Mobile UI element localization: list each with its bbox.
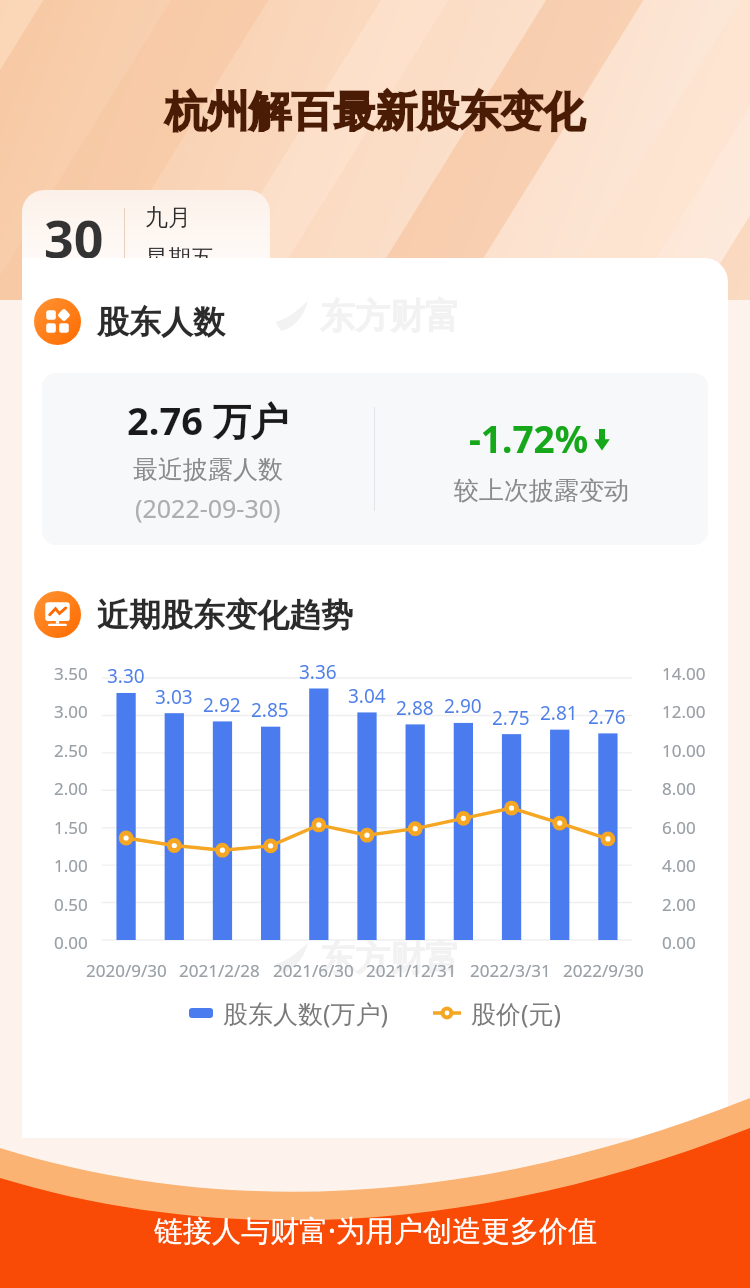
button[interactable]: 30	[22, 190, 270, 285]
staticText: 东方财富	[320, 294, 460, 338]
staticText: 0.00	[54, 931, 88, 954]
staticText: 2.00	[54, 777, 88, 800]
button[interactable]: 股东人数(万户)	[189, 996, 389, 1030]
staticText: 较上次披露变动	[454, 475, 629, 506]
staticText: 3.03	[155, 684, 193, 710]
staticText: 2.75	[492, 705, 530, 731]
button[interactable]: 近期股东变化趋势	[34, 591, 728, 638]
staticText: 0.50	[54, 893, 88, 916]
staticText: 最近披露人数	[133, 454, 283, 485]
button[interactable]: 股东人数	[34, 298, 728, 345]
staticText: 12.00	[662, 700, 706, 723]
staticText: 东方财富	[320, 936, 460, 980]
staticText: 8.00	[662, 777, 696, 800]
staticText: 2.00	[662, 893, 696, 916]
staticText: 股价(元)	[471, 996, 562, 1030]
other: 股东人数	[34, 298, 81, 345]
staticText: 链接人与财富·为用户创造更多价值	[154, 1210, 597, 1250]
staticText: 2021/2/28	[179, 959, 260, 982]
staticText: 股东人数	[97, 302, 225, 342]
staticText: 星期五	[145, 244, 214, 273]
staticText: 10.00	[662, 739, 706, 762]
staticText: 3.36	[299, 659, 337, 685]
staticText: 九月	[145, 203, 191, 232]
staticText: 3.04	[348, 683, 386, 709]
staticText: 2022/9/30	[563, 959, 644, 982]
staticText: 3.00	[54, 700, 88, 723]
staticText: 2.88	[396, 695, 434, 721]
staticText: 6.00	[662, 816, 696, 839]
staticText: 2.76	[588, 704, 626, 730]
staticText: 2021/6/30	[273, 959, 354, 982]
button[interactable]: 股价(元)	[433, 996, 562, 1030]
staticText: 股东人数(万户)	[223, 996, 389, 1030]
staticText: 3.30	[107, 663, 145, 689]
staticText: 1.50	[54, 816, 88, 839]
staticText: 3.50	[54, 662, 88, 685]
staticText: 0.00	[662, 931, 696, 954]
staticText: 2022/3/31	[470, 959, 551, 982]
staticText: 2020/9/30	[86, 959, 167, 982]
staticText: 2.50	[54, 739, 88, 762]
staticText: 2.90	[444, 693, 482, 719]
staticText: 1.00	[54, 854, 88, 877]
staticText: 2.81	[540, 700, 578, 726]
staticText: 2.92	[203, 692, 241, 718]
staticText: 14.00	[662, 662, 706, 685]
staticText: 近期股东变化趋势	[97, 595, 353, 635]
other: 近期股东变化趋势	[34, 591, 81, 638]
staticText: 2021/12/31	[366, 959, 457, 982]
staticText: 杭州解百最新股东变化	[0, 86, 750, 139]
button[interactable]: 2.76 万户	[42, 373, 708, 545]
staticText: 30	[44, 202, 104, 273]
staticText: 2.85	[251, 697, 289, 723]
staticText: 4.00	[662, 854, 696, 877]
staticText: 2.76 万户	[127, 394, 289, 446]
staticText: -1.72%	[469, 413, 589, 463]
staticText: (2022-09-30)	[135, 491, 281, 525]
